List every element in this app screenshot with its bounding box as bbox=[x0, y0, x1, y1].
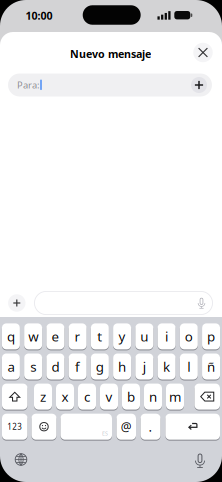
button[interactable]: b bbox=[122, 383, 140, 410]
button[interactable]: Añadir contacto bbox=[191, 77, 207, 93]
staticText: b bbox=[127, 388, 135, 405]
button[interactable]: z bbox=[34, 383, 52, 410]
staticText: y bbox=[119, 327, 126, 345]
button[interactable]: Intro bbox=[165, 413, 220, 440]
button[interactable]: k bbox=[158, 353, 176, 380]
button[interactable]: a bbox=[2, 353, 20, 380]
staticText: m bbox=[169, 388, 181, 405]
staticText: x bbox=[61, 388, 68, 405]
button[interactable]: 123 bbox=[2, 413, 27, 440]
staticText: s bbox=[30, 358, 36, 375]
staticText: ñ bbox=[207, 358, 215, 375]
button[interactable]: d bbox=[46, 353, 64, 380]
button[interactable]: c bbox=[78, 383, 96, 410]
button[interactable]: p bbox=[202, 323, 220, 350]
button[interactable]: Dictar bbox=[196, 297, 207, 309]
button[interactable]: s bbox=[24, 353, 42, 380]
button[interactable]: q bbox=[2, 323, 20, 350]
staticText: c bbox=[84, 388, 90, 405]
button[interactable]: Dictado bbox=[193, 453, 207, 468]
button[interactable]: Siguiente teclado bbox=[15, 453, 27, 466]
staticText: Para: bbox=[17, 79, 40, 91]
staticText: z bbox=[40, 388, 46, 405]
button[interactable]: x bbox=[56, 383, 74, 410]
staticText: r bbox=[75, 327, 81, 345]
staticText: . bbox=[149, 418, 153, 435]
staticText: n bbox=[149, 388, 157, 405]
staticText: k bbox=[163, 358, 170, 375]
staticText: u bbox=[140, 327, 148, 345]
button[interactable]: i bbox=[158, 323, 176, 350]
staticText: 123 bbox=[7, 421, 22, 432]
button[interactable]: w bbox=[24, 323, 42, 350]
staticText: w bbox=[28, 327, 38, 345]
button[interactable]: Para: bbox=[8, 73, 212, 96]
staticText: @ bbox=[121, 419, 132, 435]
button[interactable]: Cerrar bbox=[193, 43, 212, 62]
button[interactable]: u bbox=[135, 323, 153, 350]
button[interactable]: ñ bbox=[202, 353, 220, 380]
button[interactable]: n bbox=[144, 383, 162, 410]
button[interactable]: v bbox=[100, 383, 118, 410]
button[interactable]: m bbox=[166, 383, 184, 410]
staticText: t bbox=[97, 327, 102, 345]
button[interactable]: o bbox=[180, 323, 198, 350]
button[interactable]: Emoji bbox=[31, 413, 56, 440]
staticText: j bbox=[143, 358, 146, 375]
button[interactable]: e bbox=[46, 323, 64, 350]
staticText: d bbox=[51, 358, 59, 375]
button[interactable]: Mayúsculas bbox=[2, 383, 27, 410]
button[interactable]: Mensaje bbox=[34, 291, 213, 315]
button[interactable]: r bbox=[69, 323, 87, 350]
button[interactable]: h bbox=[113, 353, 131, 380]
staticText: Nuevo mensaje bbox=[70, 47, 151, 61]
button[interactable]: l bbox=[180, 353, 198, 380]
staticText: g bbox=[96, 358, 104, 375]
button[interactable]: j bbox=[135, 353, 153, 380]
button[interactable]: Espacio bbox=[60, 413, 112, 440]
staticText: h bbox=[118, 358, 126, 375]
button[interactable]: g bbox=[91, 353, 109, 380]
staticText: v bbox=[105, 388, 112, 405]
button[interactable]: Apps bbox=[8, 294, 26, 312]
staticText: o bbox=[185, 327, 193, 345]
staticText: f bbox=[75, 358, 80, 375]
staticText: l bbox=[187, 358, 190, 375]
button[interactable]: . bbox=[141, 413, 160, 440]
staticText: a bbox=[7, 358, 14, 375]
button[interactable]: y bbox=[113, 323, 131, 350]
staticText: q bbox=[7, 327, 15, 345]
button[interactable]: t bbox=[91, 323, 109, 350]
button[interactable]: Borrar bbox=[194, 383, 220, 410]
button[interactable]: @ bbox=[116, 413, 136, 440]
staticText: e bbox=[51, 327, 59, 345]
staticText: ES bbox=[102, 430, 108, 437]
button[interactable]: f bbox=[69, 353, 87, 380]
staticText: i bbox=[165, 327, 168, 345]
staticText: p bbox=[207, 327, 215, 345]
staticText: 10:00 bbox=[25, 8, 52, 23]
